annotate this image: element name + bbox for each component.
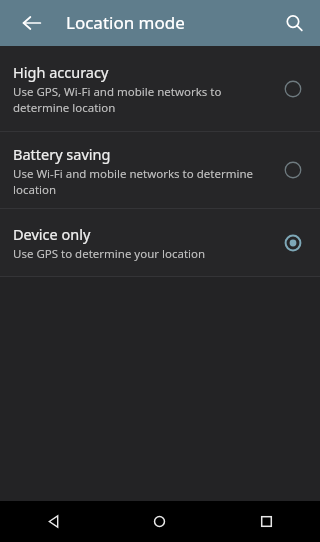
staticText: Use GPS, Wi-Fi and mobile networks to de… xyxy=(13,84,256,115)
button[interactable]: Device only xyxy=(0,209,320,276)
staticText: High accuracy xyxy=(13,62,109,82)
button[interactable]: Recent apps xyxy=(213,501,320,542)
button[interactable]: Search xyxy=(276,5,312,41)
staticText: Use Wi-Fi and mobile networks to determi… xyxy=(13,166,256,197)
button[interactable]: High accuracy xyxy=(0,46,320,131)
staticText: Battery saving xyxy=(13,144,111,164)
button[interactable]: Back xyxy=(0,501,106,542)
staticText: Location mode xyxy=(66,11,185,34)
button[interactable]: Home xyxy=(106,501,213,542)
staticText: Use GPS to determine your location xyxy=(13,246,206,262)
button[interactable]: Device only xyxy=(275,225,311,261)
button[interactable]: Battery saving xyxy=(275,152,311,188)
staticText: Device only xyxy=(13,224,91,244)
button[interactable]: Battery saving xyxy=(0,132,320,208)
button[interactable]: Back xyxy=(14,5,50,41)
button[interactable]: High accuracy xyxy=(275,71,311,107)
